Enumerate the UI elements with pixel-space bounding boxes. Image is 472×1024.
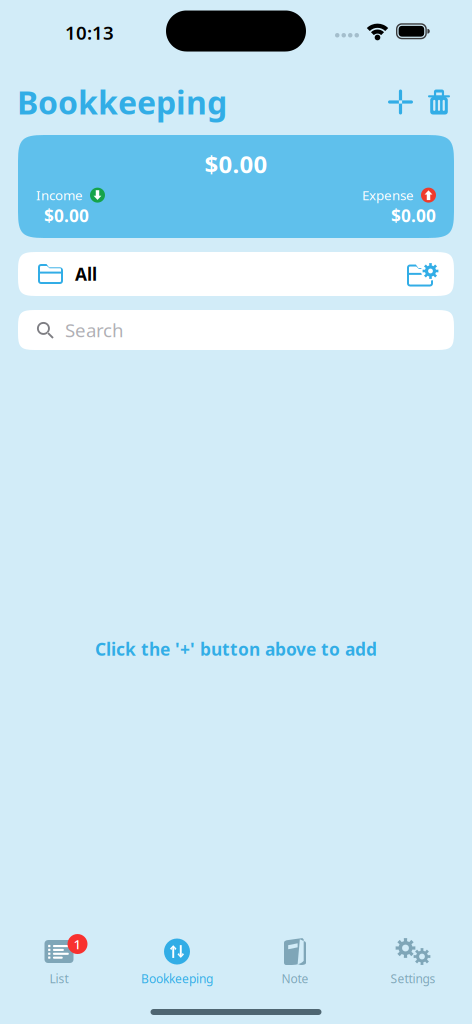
button[interactable]: Manage folders (393, 252, 454, 296)
staticText: Click the '+' button above to add (95, 637, 377, 660)
button[interactable]: Delete (419, 80, 461, 124)
staticText: Note (281, 970, 308, 986)
button[interactable]: Search (18, 310, 454, 350)
staticText: All (75, 262, 97, 285)
button[interactable]: Note (236, 933, 354, 991)
staticText: $0.00 (204, 148, 267, 180)
staticText: Income (36, 186, 83, 204)
staticText: $0.00 (44, 204, 89, 227)
button[interactable]: 1 (0, 933, 118, 991)
button[interactable]: All (18, 252, 393, 296)
staticText: $0.00 (391, 204, 436, 227)
staticText: 10:13 (65, 20, 114, 45)
staticText: Expense (362, 186, 414, 204)
staticText: Bookkeeping (141, 970, 213, 986)
staticText: Bookkeeping (17, 81, 227, 123)
button[interactable]: Settings (354, 933, 472, 991)
staticText: Search (65, 318, 124, 342)
button[interactable]: Bookkeeping (118, 933, 236, 991)
button[interactable]: Add (374, 80, 419, 124)
staticText: Settings (390, 970, 435, 986)
staticText: 1 (73, 935, 81, 953)
staticText: List (49, 970, 68, 986)
